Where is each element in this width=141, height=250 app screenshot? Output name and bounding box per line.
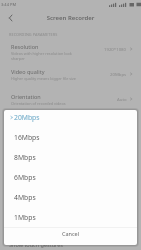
- button[interactable]: 8Mbps: [4, 147, 137, 167]
- staticText: 1920*1080: [104, 46, 127, 52]
- staticText: Cancel: [62, 230, 80, 237]
- staticText: 4Mbps: [14, 193, 36, 202]
- button[interactable]: Video quality: [0, 67, 141, 92]
- staticText: Auto: [117, 96, 127, 102]
- staticText: Higher quality means bigger file size: [11, 76, 77, 81]
- staticText: 8Mbps: [14, 153, 36, 162]
- staticText: 20Mbps: [14, 113, 40, 122]
- staticText: Show touch gestures: [9, 241, 63, 248]
- button[interactable]: 4Mbps: [4, 187, 137, 207]
- button[interactable]: Resolution: [0, 42, 141, 67]
- button[interactable]: Cancel: [4, 228, 137, 242]
- staticText: 20Mbps: [110, 71, 127, 77]
- staticText: Screen Recorder: [20, 14, 121, 22]
- staticText: Videos with higher resolution look sharp…: [11, 51, 77, 61]
- staticText: 6Mbps: [14, 173, 36, 182]
- button[interactable]: Show touch gestures: [0, 0, 141, 250]
- staticText: RECORDING PARAMETERS: [9, 32, 58, 37]
- staticText: 1Mbps: [14, 213, 36, 222]
- staticText: Orientation: [11, 93, 41, 100]
- button[interactable]: Orientation: [0, 92, 141, 117]
- staticText: 16Mbps: [14, 133, 40, 142]
- staticText: 3:44 PM: [1, 2, 17, 7]
- button[interactable]: 6Mbps: [4, 167, 137, 187]
- button[interactable]: 16Mbps: [4, 127, 137, 147]
- button[interactable]: 1Mbps: [4, 207, 137, 227]
- button[interactable]: Back: [0, 9, 20, 27]
- staticText: Orientation of recorded videos: [11, 101, 66, 106]
- button[interactable]: 20Mbps: [4, 110, 137, 127]
- staticText: Video quality: [11, 68, 45, 75]
- staticText: Resolution: [11, 43, 39, 50]
